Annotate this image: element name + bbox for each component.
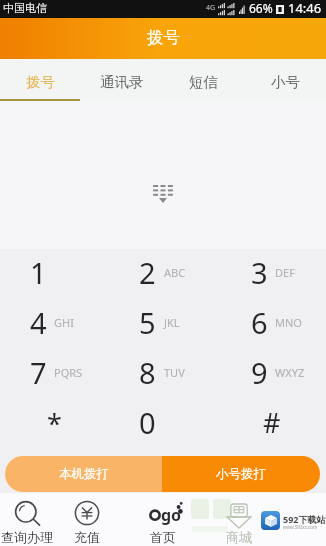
button[interactable]: * bbox=[0, 399, 108, 449]
staticText: 8 bbox=[139, 353, 156, 392]
staticText: TUV bbox=[164, 365, 185, 380]
staticText: 小号拨打 bbox=[216, 466, 266, 482]
button[interactable]: 5 bbox=[108, 299, 217, 349]
staticText: 商城 bbox=[226, 529, 252, 545]
staticText: GHI bbox=[54, 315, 74, 330]
button[interactable]: 首页 bbox=[132, 493, 194, 546]
button[interactable]: 9 bbox=[217, 349, 326, 399]
staticText: 2 bbox=[139, 253, 156, 292]
button[interactable]: 拨号 bbox=[0, 59, 81, 101]
button[interactable]: 8 bbox=[108, 349, 217, 399]
staticText: 7 bbox=[30, 353, 47, 392]
staticText: 4 bbox=[30, 303, 47, 342]
staticText: 1 bbox=[30, 253, 47, 292]
button[interactable]: 本机拨打 bbox=[5, 456, 162, 492]
button[interactable]: 3 bbox=[217, 249, 326, 299]
button[interactable]: 充值 bbox=[56, 493, 118, 546]
button[interactable]: 7 bbox=[0, 349, 108, 399]
button[interactable]: # bbox=[217, 399, 326, 449]
staticText: MNO bbox=[275, 315, 302, 330]
staticText: 充值 bbox=[74, 529, 100, 545]
button[interactable]: 6 bbox=[217, 299, 326, 349]
staticText: # bbox=[263, 404, 281, 441]
staticText: 查询办理 bbox=[1, 529, 53, 545]
button[interactable]: 查询办理 bbox=[0, 493, 58, 546]
staticText: 14:46 bbox=[288, 0, 322, 17]
button[interactable]: 2 bbox=[108, 249, 217, 299]
staticText: * bbox=[47, 405, 62, 442]
staticText: 本机拨打 bbox=[59, 466, 109, 482]
staticText: 4G bbox=[206, 3, 216, 13]
staticText: 拨号 bbox=[147, 27, 180, 48]
staticText: 5 bbox=[139, 303, 156, 342]
staticText: 9 bbox=[251, 353, 268, 392]
staticText: 小号 bbox=[271, 73, 300, 91]
staticText: 通讯录 bbox=[100, 73, 144, 91]
button[interactable]: 小号 bbox=[244, 59, 326, 101]
staticText: 66% bbox=[249, 0, 273, 16]
staticText: 首页 bbox=[150, 529, 176, 545]
button[interactable]: 短信 bbox=[162, 59, 244, 101]
staticText: PQRS bbox=[54, 365, 83, 380]
button[interactable]: 商城 bbox=[208, 493, 270, 546]
staticText: WXYZ bbox=[275, 365, 305, 380]
button[interactable]: 0 bbox=[108, 399, 217, 449]
staticText: 592下载站 bbox=[283, 513, 326, 525]
staticText: DEF bbox=[275, 265, 295, 280]
staticText: 短信 bbox=[189, 73, 218, 91]
staticText: 中国电信 bbox=[3, 1, 47, 15]
staticText: JKL bbox=[164, 315, 180, 330]
button[interactable]: 1 bbox=[0, 249, 108, 299]
staticText: 0 bbox=[139, 403, 156, 442]
staticText: ABC bbox=[164, 265, 186, 280]
button[interactable]: 小号拨打 bbox=[162, 456, 320, 492]
staticText: go bbox=[161, 504, 182, 526]
staticText: www.592xz.com bbox=[283, 524, 318, 530]
staticText: 3 bbox=[251, 253, 268, 292]
button[interactable]: Hide keypad bbox=[152, 184, 174, 204]
button[interactable]: 通讯录 bbox=[81, 59, 162, 101]
staticText: 拨号 bbox=[26, 73, 55, 91]
button[interactable]: 4 bbox=[0, 299, 108, 349]
staticText: 6 bbox=[251, 303, 268, 342]
